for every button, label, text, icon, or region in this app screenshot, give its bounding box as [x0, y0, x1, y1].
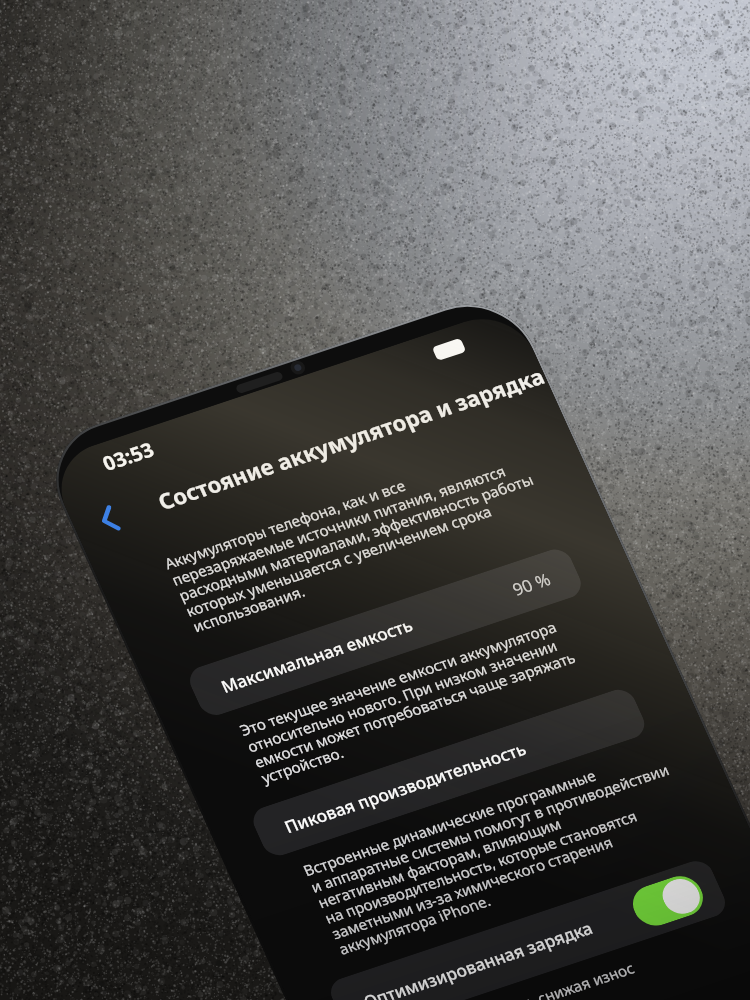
- staticText: Оптимизированная зарядка: [354, 845, 602, 1000]
- button[interactable]: Максимальная емкость: [197, 451, 574, 813]
- staticText: Пиковая производительность: [274, 662, 536, 913]
- staticText: Встроенные динамические программные и ап…: [271, 631, 729, 1000]
- staticText: Максимальная емкость: [211, 554, 423, 757]
- staticText: 03:53: [91, 420, 165, 491]
- staticText: Замедление зарядки, снижая износ аккумул…: [370, 880, 655, 1000]
- staticText: Аккумуляторы телефона, как и все перезар…: [137, 327, 574, 747]
- staticText: Состояние аккумулятора и зарядка: [145, 240, 557, 636]
- staticText: 90 %: [502, 556, 560, 612]
- staticText: Это текущее значение емкости аккумулятор…: [217, 515, 605, 888]
- button[interactable]: Оптимизированная зарядка включена: [615, 850, 721, 952]
- button[interactable]: Назад: [56, 457, 179, 575]
- button[interactable]: Пиковая производительность: [261, 592, 637, 953]
